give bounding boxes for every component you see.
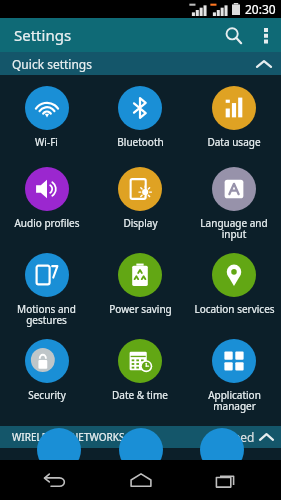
staticText: WIRELESS & NETWORKS: [12, 430, 125, 444]
button[interactable]: Display: [93, 165, 187, 232]
staticText: Wi-Fi: [35, 135, 58, 149]
staticText: Date & time: [112, 388, 168, 402]
button[interactable]: Setting: [119, 448, 163, 460]
button[interactable]: Language and input: [187, 165, 281, 243]
button[interactable]: Power saving: [93, 251, 187, 318]
button[interactable]: Setting: [37, 448, 81, 460]
staticText: Quick settings: [12, 56, 92, 72]
button[interactable]: Wi-Fi: [0, 84, 93, 151]
button[interactable]: WIRELESS & NETWORKS: [0, 426, 281, 448]
staticText: Power saving: [109, 302, 172, 316]
button[interactable]: Motions and gestures: [0, 251, 93, 329]
staticText: need: [226, 429, 255, 445]
staticText: Location services: [194, 302, 275, 316]
button[interactable]: Bluetooth: [93, 84, 187, 151]
button[interactable]: More options: [251, 20, 281, 50]
staticText: Application manager: [208, 388, 261, 413]
staticText: Audio profiles: [14, 216, 80, 230]
button[interactable]: Security: [0, 337, 93, 404]
button[interactable]: Home: [111, 460, 171, 500]
staticText: 20:30: [245, 1, 276, 17]
staticText: Display: [123, 216, 158, 230]
button[interactable]: Back: [25, 460, 85, 500]
button[interactable]: Recent apps: [196, 460, 256, 500]
staticText: Security: [28, 388, 66, 402]
button[interactable]: Data usage: [187, 84, 281, 151]
staticText: Data usage: [207, 135, 261, 149]
button[interactable]: Audio profiles: [0, 165, 93, 232]
button[interactable]: Date & time: [93, 337, 187, 404]
staticText: Settings: [14, 25, 72, 45]
button[interactable]: Search: [215, 18, 251, 52]
staticText: Language and input: [200, 216, 268, 241]
button[interactable]: Setting: [200, 448, 244, 460]
button[interactable]: Application manager: [187, 337, 281, 415]
button[interactable]: Quick settings: [0, 52, 281, 75]
staticText: Bluetooth: [117, 135, 164, 149]
staticText: Motions and gestures: [17, 302, 76, 327]
button[interactable]: Location services: [187, 251, 281, 318]
